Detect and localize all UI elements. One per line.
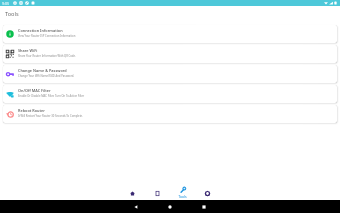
- staticText: Tools: [178, 194, 187, 198]
- button[interactable]: Recents: [187, 200, 221, 213]
- staticText: 9:05: [2, 1, 10, 6]
- staticText: It Will Restart Your Router 30 Seconds T…: [18, 114, 83, 118]
- staticText: View Your Router ISP Connection Informat…: [18, 34, 76, 38]
- button[interactable]: Home: [153, 200, 187, 213]
- button[interactable]: Change Name & Password: [3, 65, 337, 83]
- button[interactable]: Reboot Router: [3, 105, 337, 123]
- button[interactable]: Back: [119, 200, 153, 213]
- button[interactable]: Connection Information: [3, 25, 337, 43]
- button[interactable]: Share WiFi: [3, 45, 337, 63]
- staticText: On/Off MAC Filter: [18, 88, 51, 93]
- staticText: Change Your Wifi Name/SSID And Password.: [18, 74, 75, 78]
- button[interactable]: Home: [120, 184, 145, 200]
- button[interactable]: Devices: [145, 184, 170, 200]
- staticText: Share Your Router Information With QR Co…: [18, 54, 76, 58]
- button[interactable]: On/Off MAC Filter: [3, 85, 337, 103]
- staticText: Tools: [5, 10, 19, 18]
- button[interactable]: Tools: [170, 184, 195, 200]
- button[interactable]: Settings: [195, 184, 220, 200]
- staticText: Enable Or Disable MAC Filter. Turn On To…: [18, 94, 85, 98]
- staticText: Reboot Router: [18, 108, 45, 113]
- staticText: Connection Information: [18, 28, 63, 33]
- staticText: Change Name & Password: [18, 68, 67, 73]
- staticText: Share WiFi: [18, 48, 38, 53]
